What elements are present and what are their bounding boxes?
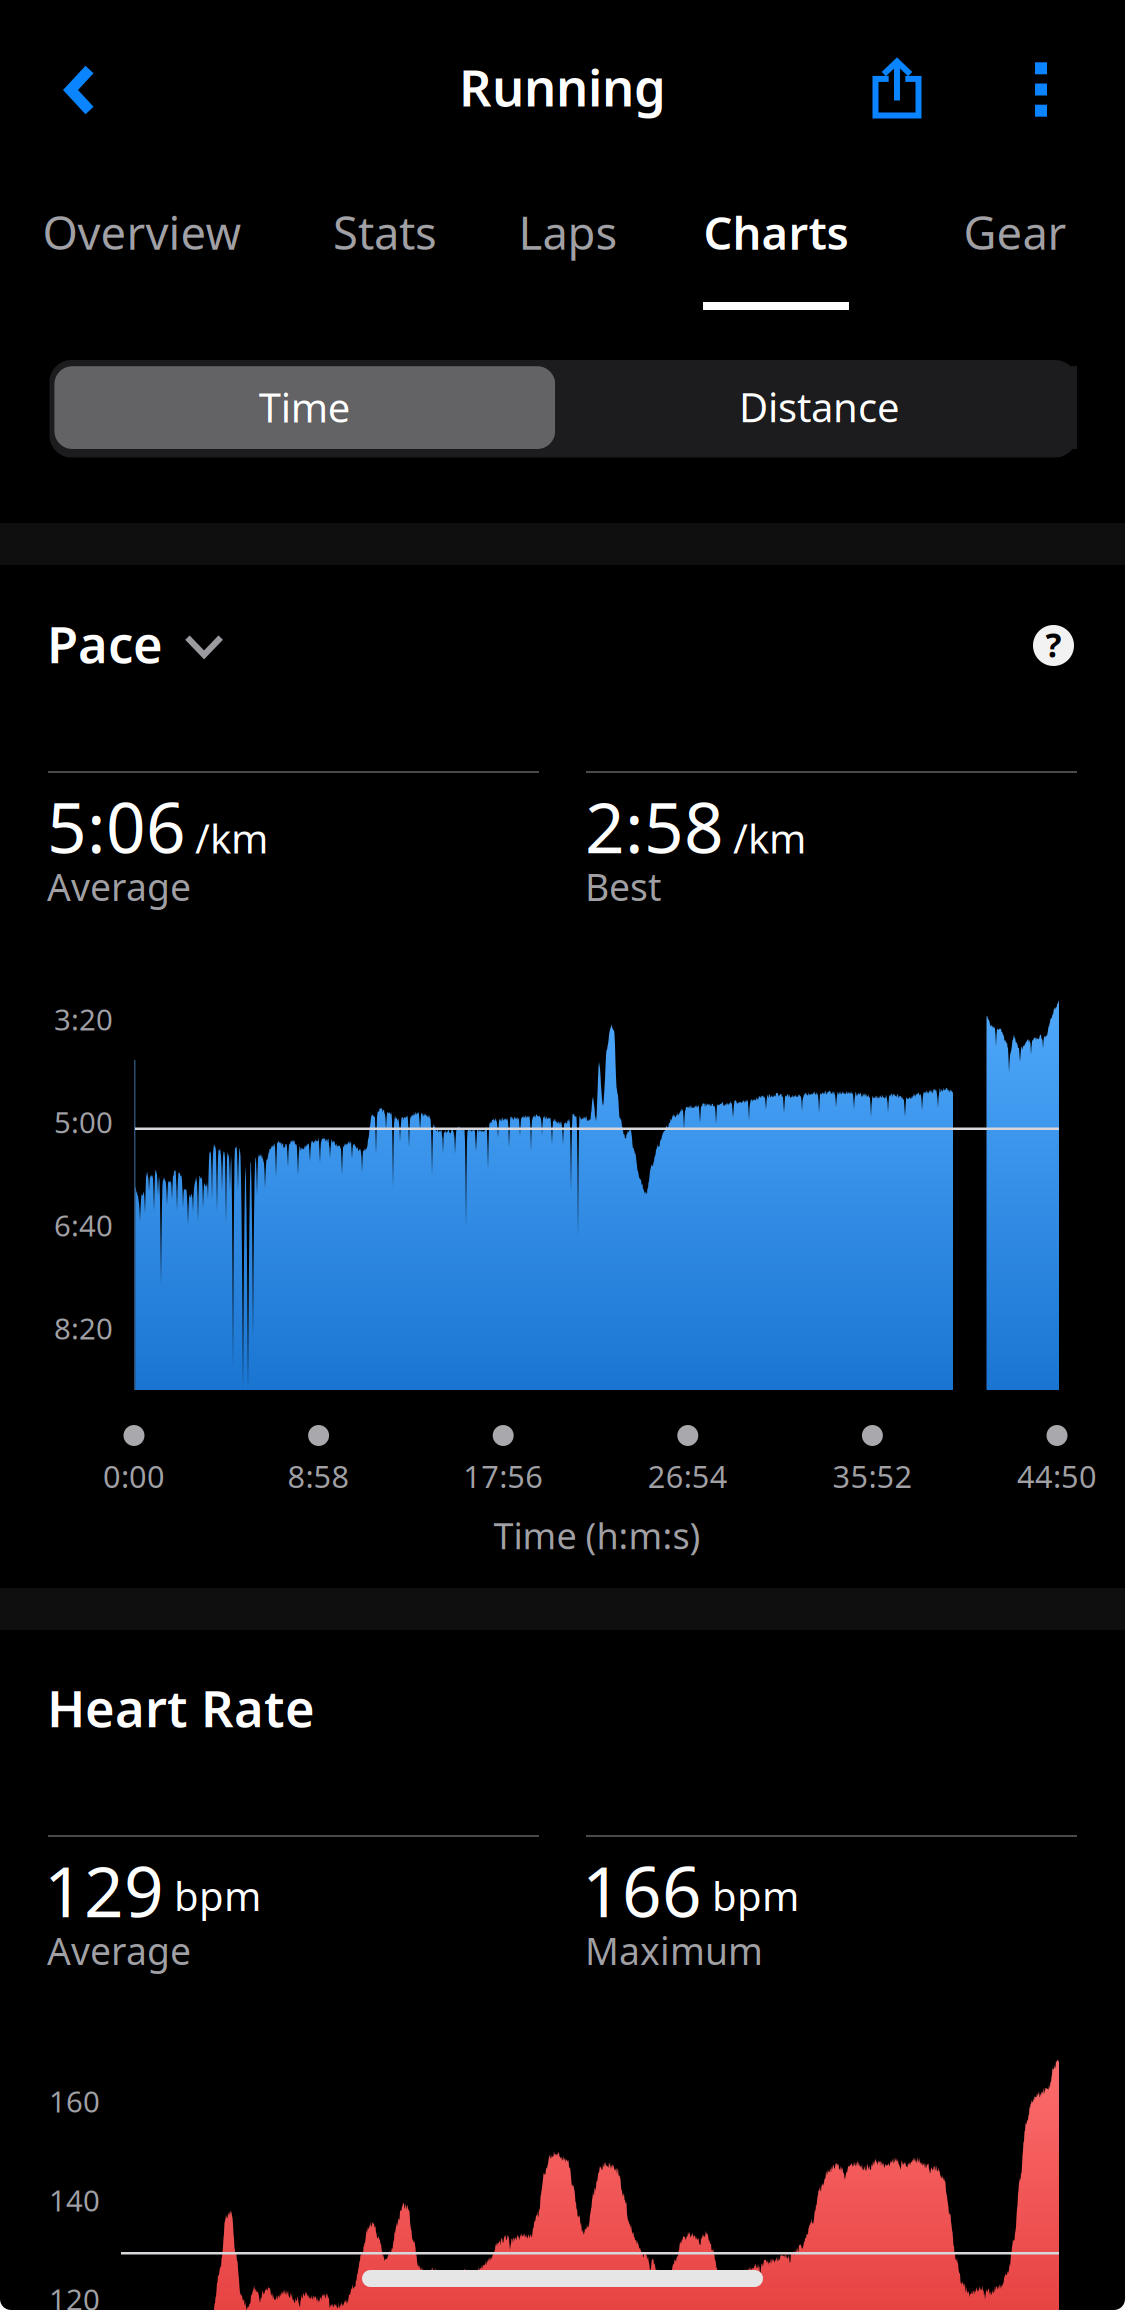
button[interactable]: Distance xyxy=(555,366,1077,449)
button[interactable]: Gear xyxy=(936,186,1094,282)
staticText: 17:56 xyxy=(463,1456,543,1496)
staticText: Overview xyxy=(42,202,241,262)
staticText: 8:20 xyxy=(54,1309,113,1348)
staticText: Pace xyxy=(47,610,163,677)
staticText: 35:52 xyxy=(832,1456,912,1496)
staticText: Heart Rate xyxy=(47,1674,315,1741)
staticText: /km xyxy=(195,811,268,864)
staticText: 5:00 xyxy=(54,1102,113,1141)
staticText: Time xyxy=(259,380,351,433)
staticText: 5:06 xyxy=(47,780,186,872)
staticText: 3:20 xyxy=(54,1000,113,1039)
button[interactable]: Laps xyxy=(494,186,642,282)
staticText: 160 xyxy=(49,2081,100,2120)
staticText: bpm xyxy=(174,1869,261,1922)
staticText: Gear xyxy=(963,202,1066,262)
staticText: Best xyxy=(585,862,661,911)
staticText: ? xyxy=(1045,622,1061,667)
staticText: 6:40 xyxy=(54,1206,113,1245)
staticText: 44:50 xyxy=(1017,1456,1097,1496)
staticText: Average xyxy=(47,1926,191,1975)
staticText: bpm xyxy=(712,1869,799,1922)
button[interactable]: Time xyxy=(54,366,555,449)
staticText: 129 xyxy=(44,1844,164,1936)
staticText: 8:58 xyxy=(288,1456,350,1496)
staticText: Distance xyxy=(739,380,900,433)
button[interactable]: What is pace? xyxy=(1033,625,1074,666)
staticText: Stats xyxy=(333,202,437,262)
staticText: 0:00 xyxy=(103,1456,165,1496)
staticText: Running xyxy=(459,53,666,120)
staticText: Laps xyxy=(518,202,617,262)
staticText: 120 xyxy=(49,2279,100,2310)
button[interactable]: Back xyxy=(24,36,136,144)
staticText: Time (h:m:s) xyxy=(493,1511,700,1559)
button[interactable]: Pace xyxy=(40,606,260,684)
button[interactable]: More options xyxy=(989,36,1093,143)
staticText: 2:58 xyxy=(585,780,724,872)
staticText: Average xyxy=(47,862,191,911)
staticText: 140 xyxy=(49,2180,100,2219)
button[interactable]: Overview xyxy=(28,186,256,282)
button[interactable]: Share xyxy=(845,37,949,140)
button[interactable]: Charts xyxy=(687,186,865,282)
button[interactable]: Stats xyxy=(306,186,464,282)
staticText: /km xyxy=(733,811,806,864)
staticText: 166 xyxy=(582,1844,702,1936)
staticText: Charts xyxy=(703,202,848,262)
staticText: Maximum xyxy=(585,1926,763,1975)
staticText: 26:54 xyxy=(648,1456,728,1496)
